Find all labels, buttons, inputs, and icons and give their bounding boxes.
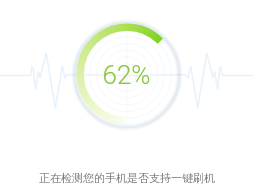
staticText: 正在检测您的手机是否支持一键刷机 <box>39 171 215 185</box>
staticText: 62% <box>102 60 151 90</box>
